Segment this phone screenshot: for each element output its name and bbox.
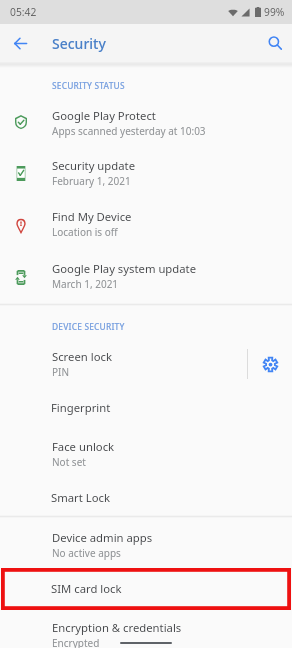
staticText: PIN: [52, 365, 70, 379]
button[interactable]: Search: [256, 24, 292, 62]
button[interactable]: Screen lock settings: [248, 339, 292, 389]
staticText: Encryption & credentials: [52, 620, 182, 635]
staticText: Not set: [52, 455, 86, 469]
button[interactable]: Device admin apps: [0, 519, 292, 570]
staticText: March 1, 2021: [52, 277, 119, 291]
staticText: Security update: [52, 158, 135, 173]
button[interactable]: Face unlock: [0, 428, 292, 479]
staticText: Fingerprint: [51, 400, 111, 415]
staticText: Smart Lock: [51, 490, 110, 505]
button[interactable]: Screen lock: [0, 338, 292, 389]
button[interactable]: Smart Lock: [0, 477, 292, 517]
staticText: SECURITY STATUS: [52, 80, 125, 91]
staticText: Apps scanned yesterday at 10:03: [52, 124, 206, 138]
staticText: Security: [52, 34, 106, 53]
staticText: February 1, 2021: [52, 174, 131, 188]
button[interactable]: SIM card lock: [0, 568, 292, 608]
button[interactable]: Find My Device: [0, 198, 292, 249]
staticText: SIM card lock: [51, 581, 122, 596]
staticText: Google Play Protect: [52, 108, 156, 123]
staticText: Encrypted: [52, 636, 100, 648]
button[interactable]: Encryption & credentials: [0, 609, 292, 648]
button[interactable]: Back: [1, 24, 39, 62]
staticText: Face unlock: [52, 439, 115, 454]
staticText: Google Play system update: [52, 261, 197, 276]
button[interactable]: Fingerprint: [0, 387, 292, 427]
button[interactable]: Google Play system update: [0, 250, 292, 301]
staticText: 99%: [264, 5, 285, 19]
button[interactable]: Security update: [0, 147, 292, 198]
staticText: Find My Device: [52, 209, 132, 224]
button[interactable]: Google Play Protect: [0, 97, 292, 148]
staticText: Screen lock: [52, 349, 112, 364]
staticText: 05:42: [10, 5, 37, 19]
staticText: Location is off: [52, 225, 118, 239]
staticText: DEVICE SECURITY: [52, 321, 125, 332]
staticText: No active apps: [52, 546, 121, 560]
staticText: Device admin apps: [52, 530, 153, 545]
